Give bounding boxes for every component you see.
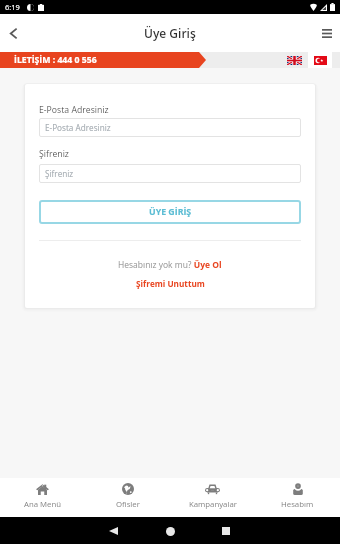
staticText: 6:19 bbox=[5, 2, 20, 12]
button[interactable]: Ana Menü bbox=[0, 478, 85, 517]
staticText: İLETİŞİM : 444 0 556 bbox=[14, 54, 97, 66]
button[interactable]: English bbox=[287, 56, 302, 65]
button[interactable]: ÜYE GİRİŞ bbox=[39, 200, 301, 224]
button[interactable]: Menu bbox=[313, 14, 340, 52]
button[interactable]: Hesabınız yok mu? Üye Ol bbox=[118, 259, 222, 271]
button[interactable]: Turkce bbox=[308, 52, 332, 68]
button[interactable]: Back bbox=[0, 14, 27, 52]
staticText: Kampanyalar bbox=[189, 499, 237, 510]
button[interactable]: Hesabım bbox=[255, 478, 340, 517]
staticText: Şifreniz bbox=[45, 168, 74, 179]
staticText: Şifreniz bbox=[39, 148, 69, 160]
button[interactable]: Home bbox=[158, 519, 182, 543]
staticText: E-Posta Adresiniz bbox=[45, 122, 111, 133]
button[interactable]: Telefon: 444 0 556 bbox=[0, 52, 340, 68]
button[interactable]: E-Posta Adresiniz bbox=[39, 118, 301, 137]
button[interactable]: Recents bbox=[214, 519, 238, 543]
staticText: Üye Giriş bbox=[144, 25, 196, 41]
staticText: Hesabım bbox=[281, 499, 314, 510]
staticText: ÜYE GİRİŞ bbox=[149, 206, 192, 218]
button[interactable]: Ofisler bbox=[85, 478, 170, 517]
button[interactable]: Şifreniz bbox=[39, 164, 301, 183]
staticText: E-Posta Adresiniz bbox=[39, 104, 109, 116]
staticText: Ofisler bbox=[116, 499, 140, 510]
staticText: Ana Menü bbox=[24, 499, 62, 510]
button[interactable]: Şifremi Unuttum bbox=[136, 278, 205, 289]
button[interactable]: Kampanyalar bbox=[170, 478, 255, 517]
button[interactable]: Back bbox=[101, 519, 125, 543]
